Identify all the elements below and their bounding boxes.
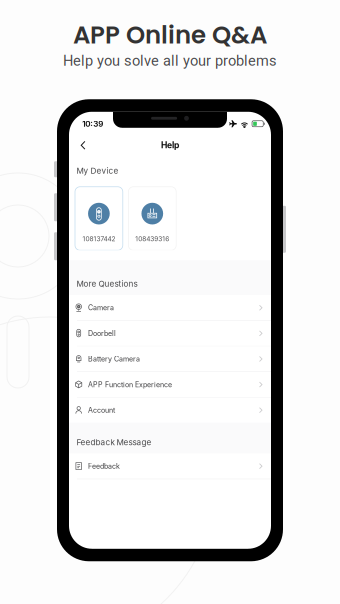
button[interactable]: Battery Camera: [69, 346, 271, 371]
button[interactable]: APP Function Experience: [69, 372, 271, 397]
staticText: 10:39: [82, 119, 103, 129]
staticText: My Device: [77, 166, 119, 176]
staticText: Battery Camera: [88, 355, 140, 363]
staticText: Account: [88, 406, 115, 414]
button[interactable]: Feedback: [69, 454, 271, 479]
staticText: Feedback Message: [77, 437, 152, 447]
staticText: 108137442: [82, 235, 115, 243]
button[interactable]: 108137442: [75, 187, 123, 250]
staticText: Help: [161, 140, 179, 150]
staticText: APP Online Q&A: [73, 18, 267, 52]
staticText: Doorbell: [88, 329, 116, 338]
button[interactable]: Back: [75, 136, 91, 155]
staticText: Help you solve all your problems: [63, 52, 277, 69]
button[interactable]: 108439316: [128, 187, 176, 250]
button[interactable]: Camera: [69, 295, 271, 320]
staticText: Feedback: [88, 462, 120, 470]
staticText: 108439316: [135, 235, 169, 243]
button[interactable]: Doorbell: [69, 321, 271, 346]
button[interactable]: Account: [69, 398, 271, 423]
staticText: More Questions: [77, 279, 138, 289]
staticText: Camera: [88, 303, 114, 312]
staticText: APP Function Experience: [88, 380, 172, 389]
